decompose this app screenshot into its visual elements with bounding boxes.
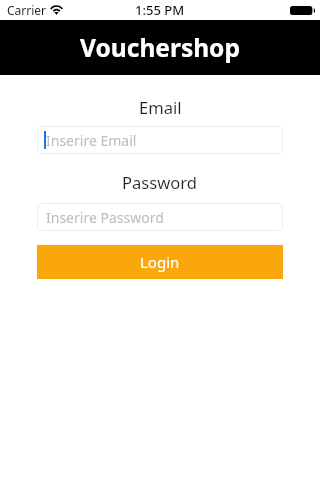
- staticText: 1:55 PM: [135, 1, 185, 19]
- button[interactable]: Login: [37, 245, 283, 279]
- other: Battery full: [290, 6, 315, 15]
- button[interactable]: Inserire Email: [37, 126, 283, 154]
- other: Wi-Fi signal: [50, 5, 63, 15]
- staticText: Inserire Password: [46, 208, 164, 227]
- staticText: Login: [140, 252, 180, 272]
- staticText: Password: [122, 171, 198, 194]
- staticText: Email: [139, 96, 182, 119]
- staticText: Inserire Email: [46, 131, 137, 150]
- staticText: Carrier: [7, 2, 47, 18]
- button[interactable]: Inserire Password: [37, 203, 283, 231]
- staticText: Vouchershop: [80, 31, 240, 64]
